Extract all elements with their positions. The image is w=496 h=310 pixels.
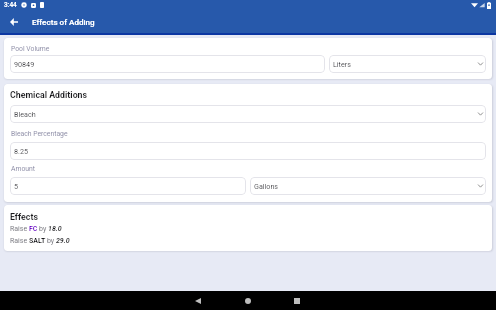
button[interactable]: 90849	[10, 55, 325, 73]
staticText: Amount	[11, 165, 35, 173]
staticText: Raise FC by 18.0	[10, 225, 62, 233]
button[interactable]: Gallons	[250, 177, 486, 195]
button[interactable]: Recent apps	[287, 291, 307, 310]
staticText: Pool Volume	[11, 45, 50, 53]
staticText: Effects	[10, 212, 38, 222]
staticText: Gallons	[254, 182, 279, 190]
staticText: Bleach Percentage	[11, 130, 68, 138]
button[interactable]: Liters	[329, 55, 486, 73]
button[interactable]: 5	[10, 177, 246, 195]
button[interactable]: Back	[0, 13, 27, 30]
staticText: 8.25	[14, 147, 29, 155]
staticText: Bleach	[14, 110, 36, 118]
staticText: 3:44	[4, 1, 17, 9]
button[interactable]: 8.25	[10, 142, 486, 160]
staticText: Effects of Adding	[32, 17, 95, 26]
staticText: Raise SALT by 29.0	[10, 237, 70, 245]
staticText: Chemical Additions	[10, 90, 88, 100]
staticText: 5	[14, 182, 19, 190]
button[interactable]: Bleach	[10, 105, 486, 123]
staticText: Liters	[333, 60, 351, 68]
button[interactable]: Back	[188, 291, 208, 310]
button[interactable]: Home	[238, 291, 258, 310]
staticText: 90849	[14, 60, 35, 68]
